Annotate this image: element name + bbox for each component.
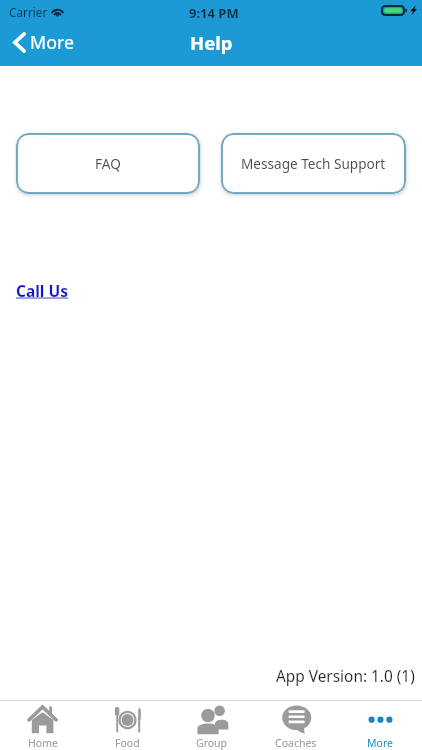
staticText: Call Us	[16, 280, 69, 301]
button[interactable]: Home	[0, 701, 85, 750]
staticText: More	[30, 30, 74, 54]
button[interactable]: Call Us	[16, 280, 69, 301]
staticText: Home	[28, 736, 58, 750]
button[interactable]: Group	[170, 701, 254, 750]
staticText: FAQ	[95, 154, 121, 173]
staticText: App Version: 1.0 (1)	[276, 666, 415, 687]
button[interactable]: More	[338, 701, 422, 750]
staticText: More	[367, 736, 393, 750]
staticText: Message Tech Support	[241, 154, 386, 173]
staticText: 9:14 PM	[189, 4, 239, 22]
staticText: Help	[190, 30, 233, 55]
staticText: Food	[115, 736, 140, 750]
staticText: Group	[196, 736, 228, 750]
staticText: Coaches	[275, 736, 317, 750]
button[interactable]: Back to More	[0, 25, 88, 59]
staticText: Carrier	[9, 4, 48, 20]
button[interactable]: FAQ	[16, 133, 200, 194]
button[interactable]: Coaches	[254, 701, 338, 750]
button[interactable]: Message Tech Support	[221, 133, 406, 194]
button[interactable]: Food	[85, 701, 170, 750]
